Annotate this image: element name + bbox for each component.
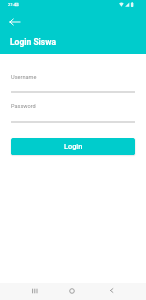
button[interactable]: Recent apps: [25, 282, 45, 299]
button[interactable]: Login: [11, 138, 135, 155]
button[interactable]: Username: [0, 67, 146, 97]
staticText: Password: [11, 103, 36, 110]
button[interactable]: Navigate up: [6, 13, 24, 31]
staticText: Login Siswa: [10, 37, 57, 47]
staticText: Login: [64, 142, 83, 151]
button[interactable]: Home: [62, 282, 82, 299]
button[interactable]: Back: [101, 282, 121, 299]
staticText: Username: [11, 74, 37, 81]
button[interactable]: Password: [0, 97, 146, 127]
staticText: 21:45: [8, 2, 19, 7]
